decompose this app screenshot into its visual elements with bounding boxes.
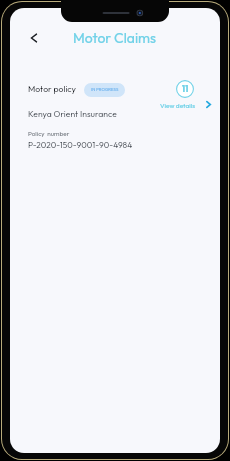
staticText: View details [160,101,196,109]
staticText: 11 [182,83,189,95]
button[interactable]: View details [160,96,213,113]
staticText: Kenya Orient Insurance [28,108,117,119]
button[interactable]: Back [23,27,45,49]
staticText: P-2020-150-9001-90-4984 [28,140,133,151]
button[interactable]: 11 claims [176,80,194,98]
staticText: IN PROGRESS [91,87,119,93]
staticText: Motor Claims [73,29,157,47]
staticText: Policy number [28,130,70,138]
staticText: Motor policy [28,83,77,94]
button[interactable]: IN PROGRESS [84,83,125,97]
